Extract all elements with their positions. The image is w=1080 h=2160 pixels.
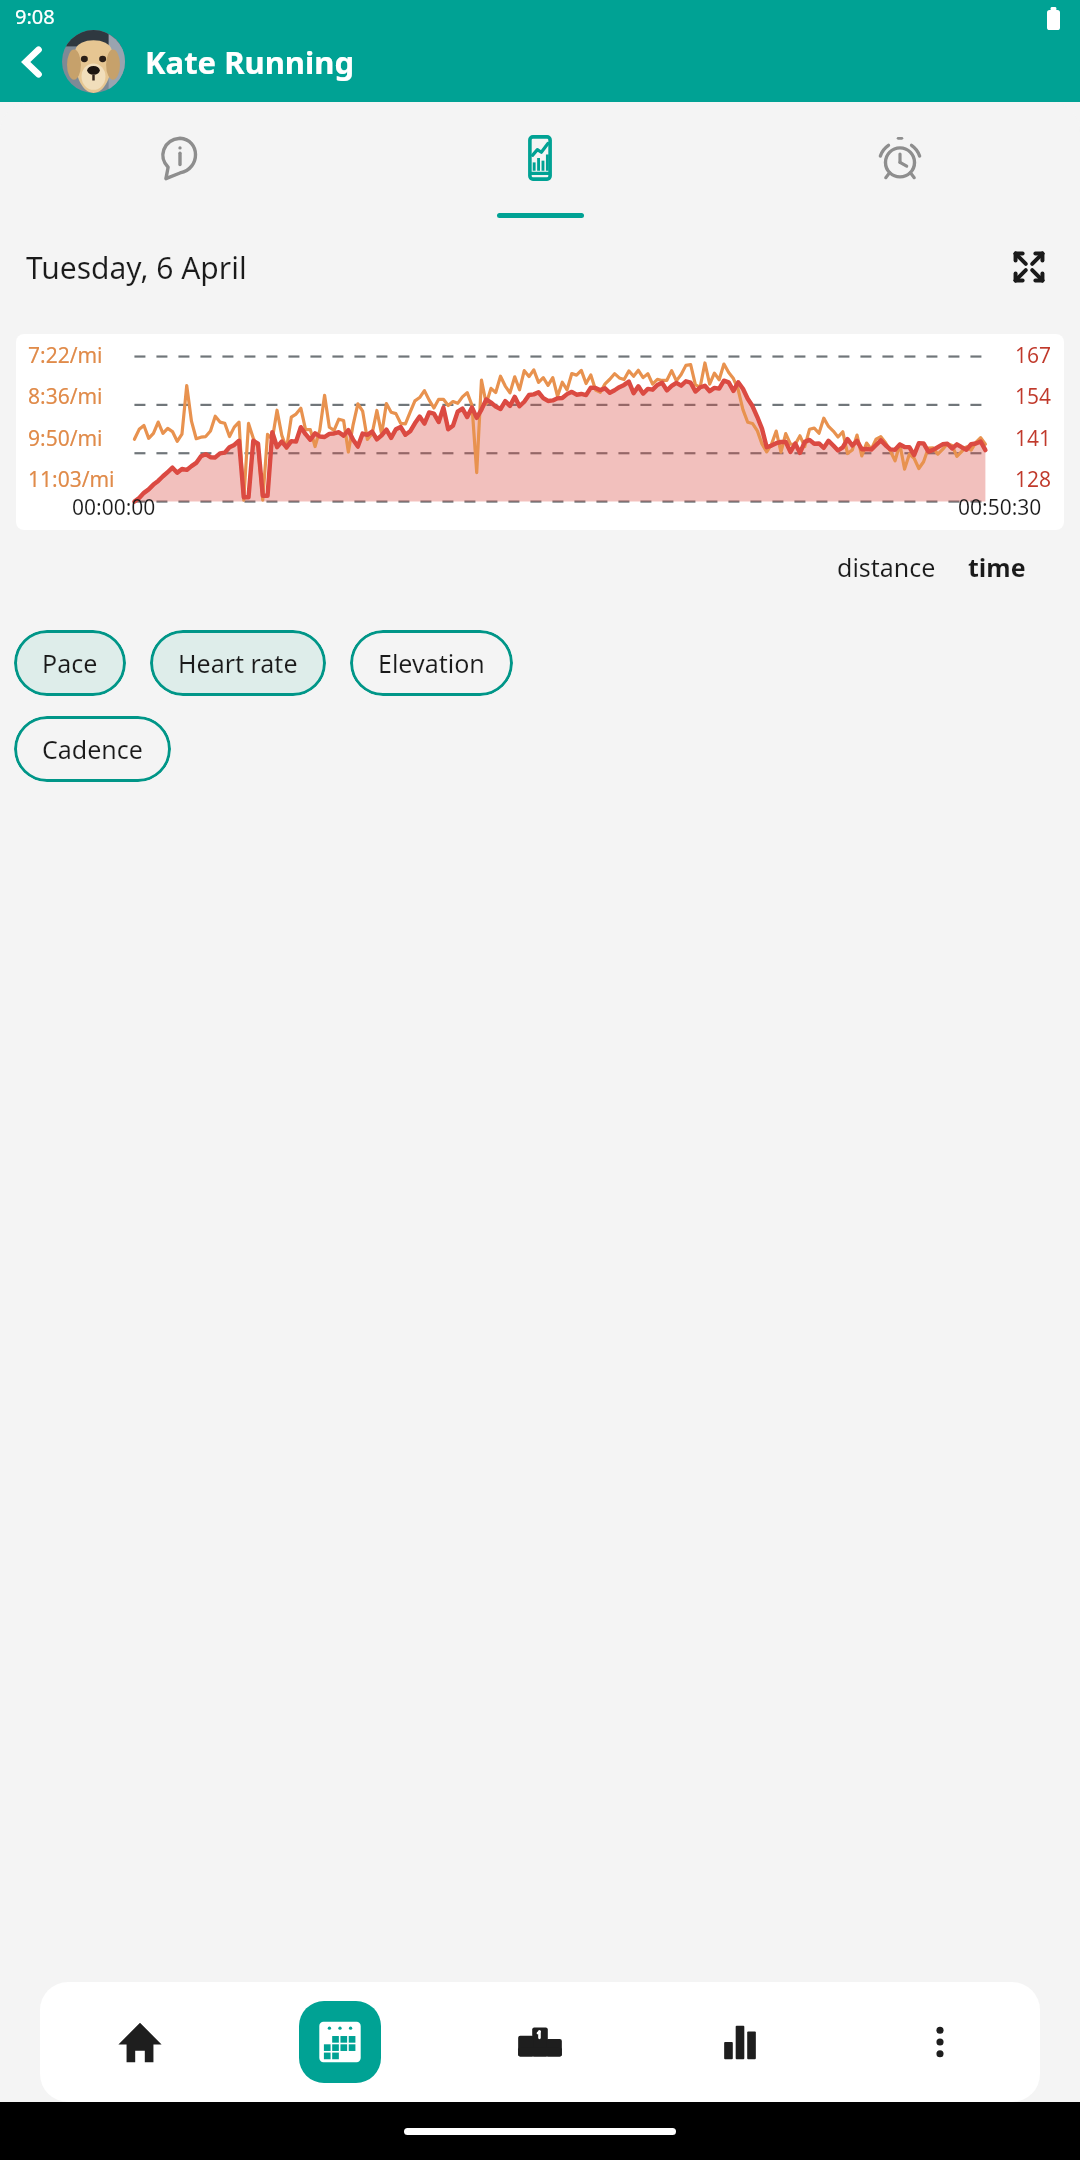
button[interactable]: Heart rate [150,630,326,696]
staticText: 7:22/mi [28,341,103,370]
button[interactable]: Info [0,102,360,196]
button[interactable]: Home [40,1982,240,2102]
staticText: 00:00:00 [72,493,156,522]
staticText: 9:08 [15,3,55,30]
staticText: Heart rate [178,646,298,680]
button[interactable]: More [840,1982,1040,2102]
button[interactable]: Leaderboard [440,1982,640,2102]
button[interactable]: Timer [720,102,1080,196]
button[interactable]: Charts [360,102,720,196]
button[interactable]: 7:22/mi [16,334,1064,530]
staticText: Pace [42,646,98,680]
staticText: Kate Running [145,41,354,83]
button[interactable]: Elevation [350,630,513,696]
staticText: distance [837,550,936,584]
staticText: 167 [1015,341,1052,370]
staticText: 9:50/mi [28,424,103,453]
staticText: Cadence [42,732,143,766]
button[interactable]: distance [831,544,942,590]
staticText: 154 [1015,382,1052,411]
staticText: 141 [1015,424,1052,453]
button[interactable]: Stats [640,1982,840,2102]
button[interactable]: Back [8,37,58,87]
staticText: 11:03/mi [28,465,115,494]
staticText: 128 [1015,465,1052,494]
staticText: time [968,550,1026,584]
button[interactable]: time [962,544,1032,590]
staticText: 8:36/mi [28,382,103,411]
staticText: 00:50:30 [958,493,1042,522]
button[interactable]: Pace [14,630,126,696]
button[interactable]: Cadence [14,716,171,782]
button[interactable]: Calendar [240,1982,440,2102]
button[interactable]: Full screen [1000,238,1058,296]
staticText: Elevation [378,646,485,680]
staticText: Tuesday, 6 April [26,247,247,288]
